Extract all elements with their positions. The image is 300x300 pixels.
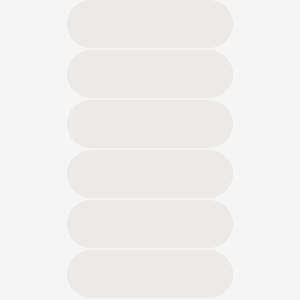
button[interactable]: Item 4 bbox=[67, 150, 233, 198]
button[interactable]: Item 6 bbox=[67, 250, 233, 298]
button[interactable]: Item 2 bbox=[67, 50, 233, 98]
button[interactable]: Item 1 bbox=[67, 0, 233, 48]
button[interactable]: Item 3 bbox=[67, 100, 233, 148]
button[interactable]: Item 5 bbox=[67, 200, 233, 248]
